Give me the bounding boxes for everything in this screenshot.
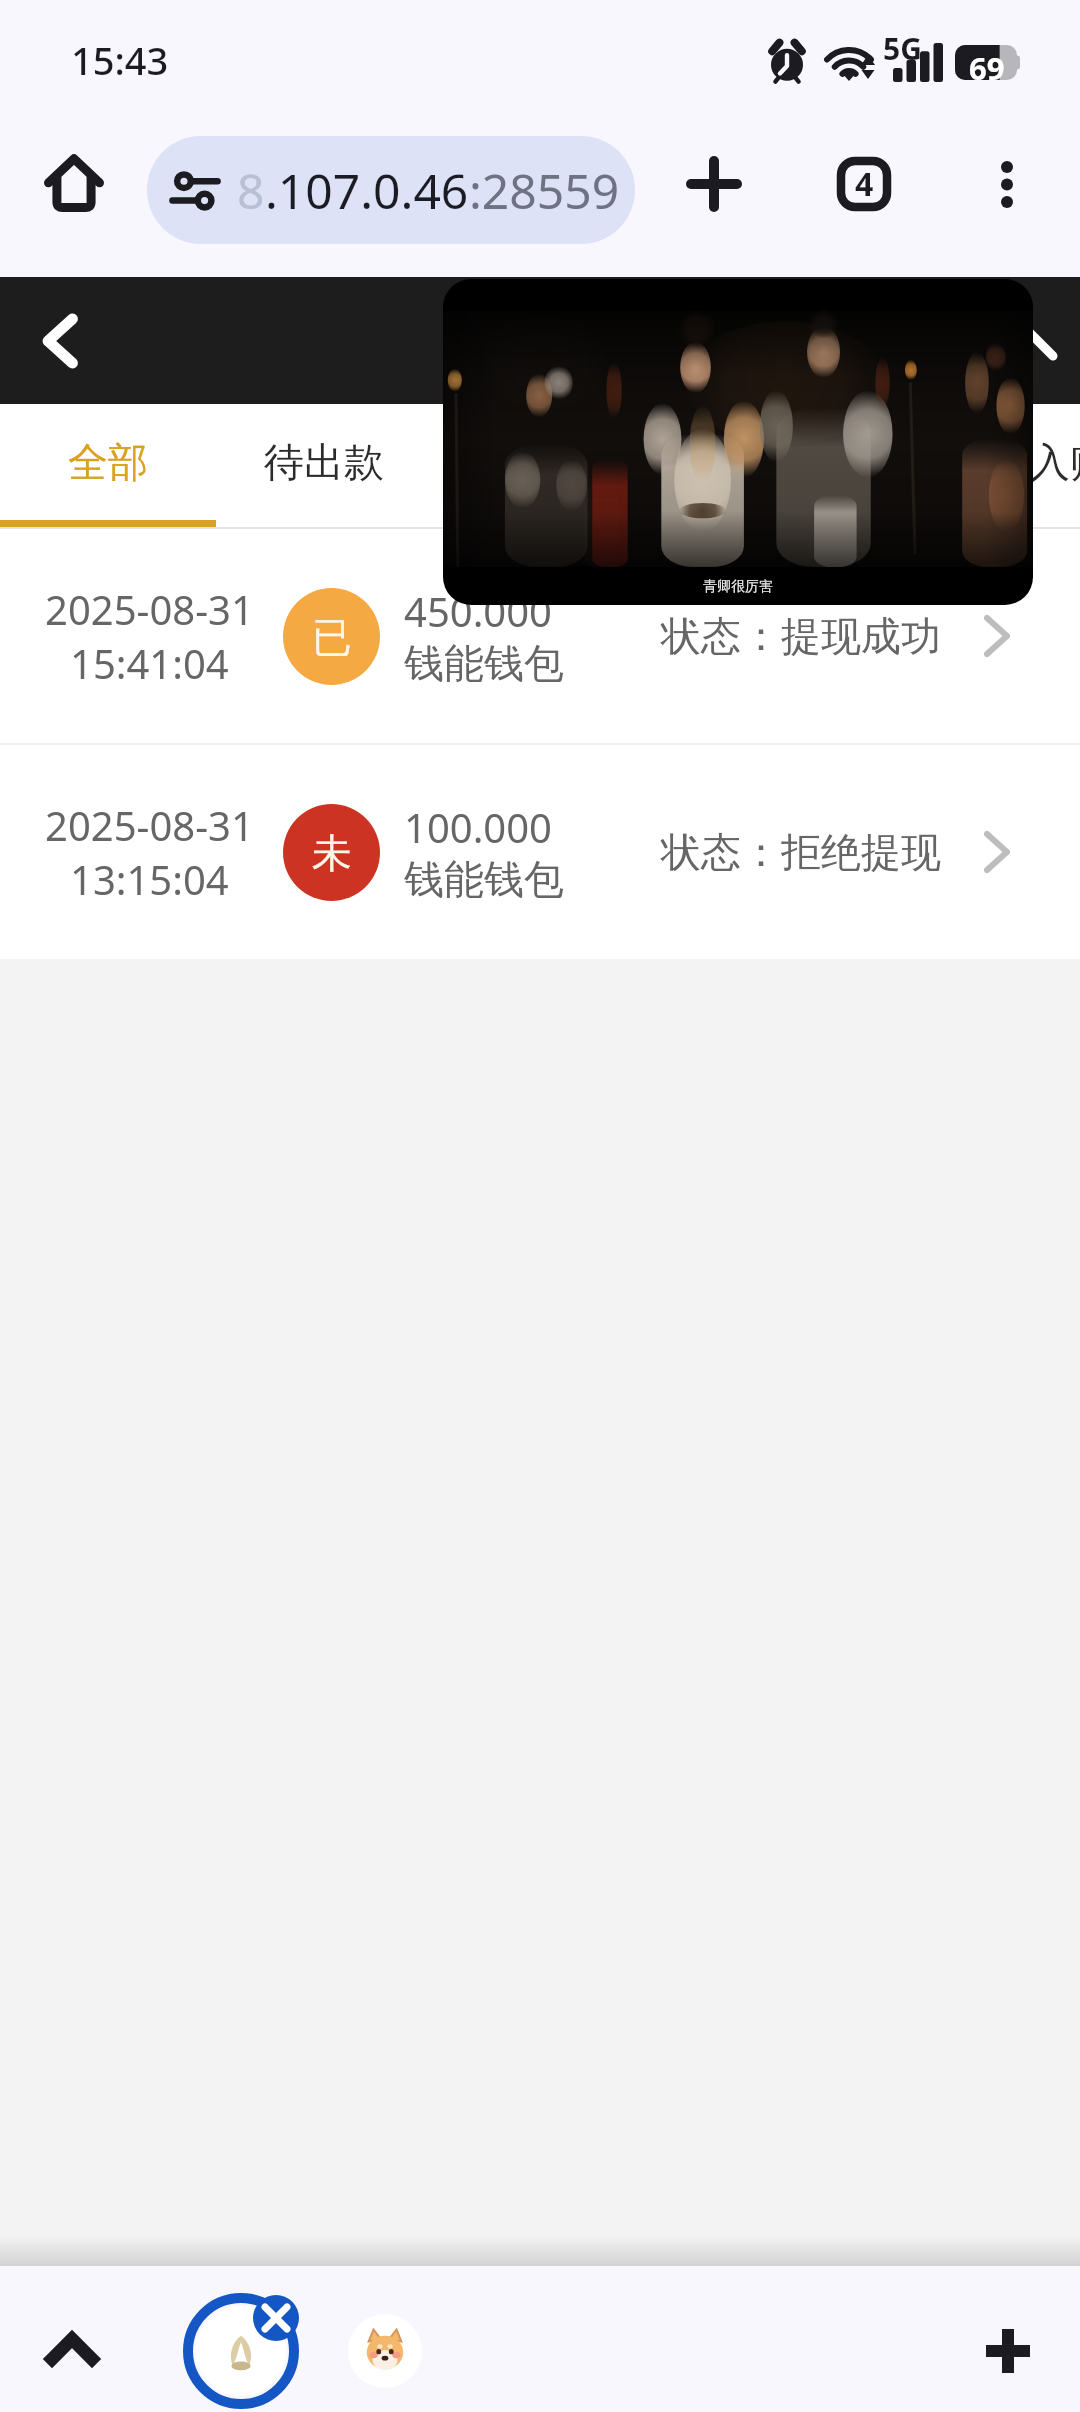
staticText: 100.000 <box>404 800 552 854</box>
staticText: 2025-08-31 <box>45 582 254 636</box>
button[interactable]: Picture in picture video <box>443 279 1033 605</box>
staticText: 13:15:04 <box>70 852 229 906</box>
staticText: 钱能钱包 <box>404 638 564 688</box>
button[interactable]: Close tab <box>253 2295 299 2341</box>
staticText: 5G <box>883 28 922 69</box>
button[interactable]: 2025-08-31 <box>0 745 1080 959</box>
staticText: 入账 <box>1030 437 1080 487</box>
button[interactable]: More <box>1006 309 1070 373</box>
button[interactable]: 已出款 <box>432 404 648 520</box>
button[interactable]: 全部 <box>0 404 216 520</box>
staticText: 待出款 <box>264 437 384 487</box>
staticText: 已拒绝 <box>696 437 816 487</box>
staticText: 15:43 <box>71 34 169 86</box>
button[interactable]: Current tab <box>183 2293 299 2409</box>
button[interactable]: Home <box>26 134 122 230</box>
staticText: .107.0.46 <box>265 158 469 223</box>
button[interactable]: More options <box>960 137 1054 231</box>
button[interactable]: New tab <box>962 2305 1054 2397</box>
staticText: 69 <box>969 47 1005 89</box>
staticText: 2025-08-31 <box>45 798 254 852</box>
staticText: 青卿很厉害 <box>703 578 773 596</box>
staticText: 已 <box>312 612 352 662</box>
button[interactable]: 8 <box>147 136 635 244</box>
staticText: :28559 <box>469 158 620 223</box>
staticText: 状态：拒绝提现 <box>661 827 941 877</box>
staticText: 状态：提现成功 <box>661 611 941 661</box>
button[interactable]: 已拒绝 <box>648 404 864 520</box>
staticText: 8 <box>237 158 265 223</box>
button[interactable]: New tab <box>667 137 761 231</box>
staticText: 全部 <box>68 437 148 487</box>
staticText: 15:41:04 <box>70 636 229 690</box>
button[interactable]: Switch tabs <box>817 137 911 231</box>
button[interactable]: Back <box>18 298 104 384</box>
button[interactable]: 入账 <box>962 404 1080 520</box>
button[interactable]: Expand tab strip <box>26 2303 118 2395</box>
staticText: 450.000 <box>404 584 552 638</box>
staticText: 钱能钱包 <box>404 854 564 904</box>
button[interactable]: 2025-08-31 <box>0 529 1080 743</box>
staticText: 未 <box>312 828 352 878</box>
button[interactable]: 待出款 <box>216 404 432 520</box>
staticText: 4 <box>855 162 874 206</box>
button[interactable]: Other tab <box>348 2314 422 2388</box>
staticText: 已出款 <box>480 437 600 487</box>
